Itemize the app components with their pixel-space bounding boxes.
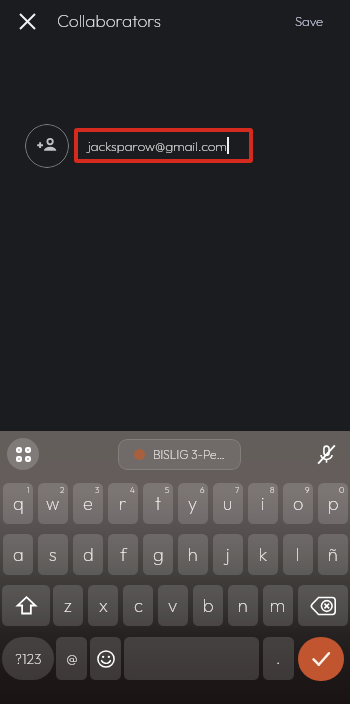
staticText: t	[155, 492, 162, 515]
staticText: f	[120, 543, 127, 566]
button[interactable]: s	[38, 534, 68, 575]
button[interactable]: l	[283, 534, 313, 575]
button[interactable]: jacksparow@gmail.com	[74, 128, 253, 163]
staticText: w	[46, 492, 60, 515]
button[interactable]: Shift	[2, 585, 50, 626]
staticText: 6	[200, 485, 205, 495]
staticText: v	[168, 594, 178, 617]
button[interactable]: Space	[124, 637, 259, 680]
staticText: 4	[130, 485, 135, 495]
button[interactable]: n	[228, 585, 258, 626]
button[interactable]: m	[263, 585, 293, 626]
button[interactable]: Voice input off	[311, 439, 342, 470]
button[interactable]: v	[158, 585, 188, 626]
staticText: h	[188, 543, 198, 566]
staticText: 8	[270, 485, 275, 495]
staticText: b	[203, 594, 214, 617]
staticText: 5	[165, 485, 170, 495]
button[interactable]: z	[53, 585, 83, 626]
button[interactable]: p	[318, 483, 348, 524]
button[interactable]: c	[123, 585, 153, 626]
staticText: jacksparow@gmail.com	[88, 137, 227, 154]
button[interactable]: ñ	[318, 534, 348, 575]
staticText: 1	[27, 485, 30, 495]
staticText: p	[328, 492, 339, 515]
button[interactable]: q	[3, 483, 33, 524]
staticText: q	[13, 492, 24, 515]
staticText: c	[134, 594, 143, 617]
staticText: n	[238, 594, 248, 617]
staticText: ñ	[328, 543, 338, 566]
button[interactable]: j	[213, 534, 243, 575]
button[interactable]: o	[283, 483, 313, 524]
button[interactable]: w	[38, 483, 68, 524]
button[interactable]: k	[248, 534, 278, 575]
button[interactable]: d	[73, 534, 103, 575]
button[interactable]: Add collaborator	[25, 124, 69, 168]
staticText: ?123	[15, 650, 42, 668]
button[interactable]: i	[248, 483, 278, 524]
staticText: 3	[95, 485, 100, 495]
button[interactable]: x	[88, 585, 118, 626]
button[interactable]: y	[178, 483, 208, 524]
staticText: 9	[305, 485, 310, 495]
staticText: 7	[235, 485, 240, 495]
button[interactable]: @	[56, 637, 87, 680]
button[interactable]: Backspace	[298, 585, 348, 626]
button[interactable]: f	[108, 534, 138, 575]
staticText: Collaborators	[57, 10, 162, 32]
button[interactable]: Keyboard options	[7, 438, 39, 470]
button[interactable]: e	[73, 483, 103, 524]
button[interactable]: Emoji	[90, 637, 121, 680]
button[interactable]: t	[143, 483, 173, 524]
button[interactable]: b	[193, 585, 223, 626]
staticText: i	[261, 492, 265, 515]
button[interactable]: Save	[291, 7, 328, 35]
button[interactable]: g	[143, 534, 173, 575]
button[interactable]: BISLIG 3-Pe…	[118, 439, 241, 470]
staticText: 0	[339, 485, 345, 495]
button[interactable]: u	[213, 483, 243, 524]
staticText: e	[83, 492, 93, 515]
button[interactable]: a	[3, 534, 33, 575]
staticText: l	[296, 543, 300, 566]
staticText: Save	[295, 13, 324, 29]
button[interactable]: .	[263, 637, 294, 680]
staticText: d	[83, 543, 94, 566]
staticText: r	[119, 492, 127, 515]
staticText: s	[49, 543, 57, 566]
button[interactable]: r	[108, 483, 138, 524]
staticText: a	[13, 543, 24, 566]
staticText: k	[259, 543, 268, 566]
staticText: 2	[60, 485, 65, 495]
staticText: g	[153, 543, 164, 566]
staticText: o	[293, 492, 304, 515]
staticText: BISLIG 3-Pe…	[153, 447, 225, 462]
staticText: .	[276, 649, 281, 668]
staticText: y	[188, 492, 198, 515]
staticText: m	[270, 594, 286, 617]
staticText: z	[64, 594, 72, 617]
button[interactable]: Enter	[298, 637, 344, 681]
staticText: u	[223, 492, 233, 515]
button[interactable]: h	[178, 534, 208, 575]
staticText: x	[99, 594, 108, 617]
button[interactable]: Close	[11, 5, 44, 38]
staticText: j	[226, 543, 230, 566]
button[interactable]: ?123	[2, 637, 54, 680]
staticText: @	[66, 649, 78, 668]
